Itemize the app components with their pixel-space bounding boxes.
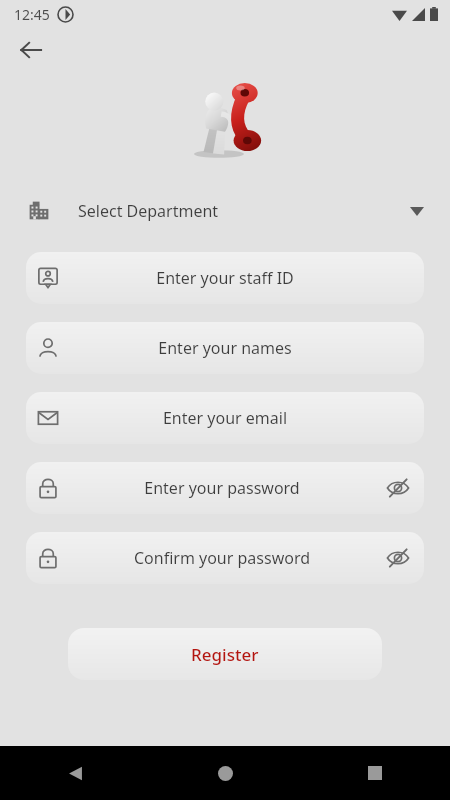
button[interactable]: Enter your names: [26, 322, 424, 374]
staticText: Enter your staff ID: [74, 267, 376, 289]
button[interactable]: Back: [12, 31, 50, 69]
staticText: Register: [191, 643, 259, 666]
button[interactable]: Toggle password visibility: [380, 470, 416, 506]
staticText: 12:45: [14, 5, 50, 24]
staticText: Confirm your password: [74, 547, 370, 569]
button[interactable]: Register: [68, 628, 382, 680]
button[interactable]: Recent apps: [300, 746, 450, 800]
staticText: Enter your password: [74, 477, 370, 499]
button[interactable]: Toggle password visibility: [380, 540, 416, 576]
staticText: Select Department: [78, 200, 219, 222]
button[interactable]: Select Department: [0, 190, 450, 232]
button[interactable]: Enter your password: [26, 462, 424, 514]
button[interactable]: Confirm your password: [26, 532, 424, 584]
button[interactable]: Enter your staff ID: [26, 252, 424, 304]
button[interactable]: Enter your email: [26, 392, 424, 444]
staticText: Enter your names: [74, 337, 376, 359]
button[interactable]: Home: [150, 746, 300, 800]
staticText: Enter your email: [74, 407, 376, 429]
button[interactable]: Back: [0, 746, 150, 800]
